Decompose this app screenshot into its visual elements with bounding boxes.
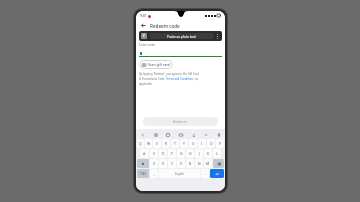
- button[interactable]: L: [213, 149, 221, 158]
- button[interactable]: R: [162, 139, 170, 148]
- staticText: M: [206, 161, 210, 166]
- button[interactable]: U: [189, 139, 197, 148]
- button[interactable]: Enter: [210, 169, 224, 178]
- staticText: E: [156, 141, 158, 146]
- button[interactable]: mic: [215, 131, 222, 138]
- staticText: H: [189, 151, 192, 156]
- button[interactable]: Scan gift card: [139, 60, 173, 69]
- button[interactable]: D: [159, 149, 167, 158]
- staticText: J: [199, 151, 200, 156]
- staticText: 9:41: [140, 14, 147, 18]
- staticText: ,: [154, 171, 155, 176]
- button[interactable]: More options: [215, 32, 220, 40]
- button[interactable]: ?123: [137, 169, 149, 178]
- button[interactable]: X: [159, 159, 167, 168]
- staticText: Terms and Conditions: [166, 77, 194, 81]
- staticText: X: [162, 161, 164, 166]
- button[interactable]: Back: [139, 21, 148, 30]
- button[interactable]: clip: [190, 131, 197, 138]
- button[interactable]: gear: [152, 131, 159, 138]
- button[interactable]: dash: [202, 131, 209, 138]
- button[interactable]: C: [168, 159, 176, 168]
- button[interactable]: G: [177, 149, 185, 158]
- button[interactable]: F: [168, 149, 176, 158]
- button[interactable]: M: [204, 159, 212, 168]
- staticText: & Promotional Code: [139, 77, 166, 81]
- staticText: English: [175, 172, 185, 176]
- button[interactable]: B: [186, 159, 194, 168]
- button[interactable]: N: [195, 159, 203, 168]
- staticText: Redeem: [173, 119, 188, 124]
- staticText: Y: [183, 141, 185, 146]
- staticText: Scan gift card: [148, 62, 170, 67]
- staticText: Redeem code: [150, 23, 180, 29]
- staticText: P: [143, 34, 145, 38]
- button[interactable]: P: [139, 31, 222, 41]
- button[interactable]: .: [201, 169, 209, 178]
- button[interactable]: Enter code: [139, 43, 222, 57]
- button[interactable]: Q: [137, 139, 144, 148]
- staticText: D: [162, 151, 165, 156]
- button[interactable]: A: [140, 149, 149, 158]
- button[interactable]: Paste as plain text: [150, 33, 213, 39]
- button[interactable]: English: [159, 169, 200, 178]
- staticText: applicable.: [139, 82, 153, 86]
- staticText: K: [207, 151, 210, 156]
- button[interactable]: sticker: [164, 131, 171, 138]
- staticText: T: [174, 141, 176, 146]
- button[interactable]: S: [150, 149, 158, 158]
- staticText: I: [201, 141, 203, 146]
- staticText: N: [198, 161, 201, 166]
- staticText: V: [180, 161, 183, 166]
- staticText: , as: [194, 77, 199, 81]
- staticText: W: [147, 141, 151, 146]
- button[interactable]: O: [207, 139, 215, 148]
- button[interactable]: Backspace: [213, 159, 224, 168]
- button[interactable]: gif: [177, 131, 184, 138]
- button[interactable]: Redeem: [143, 117, 218, 126]
- staticText: F: [171, 151, 173, 156]
- button[interactable]: E: [153, 139, 161, 148]
- staticText: .: [205, 171, 206, 176]
- staticText: Paste as plain text: [167, 34, 196, 39]
- staticText: O: [210, 141, 213, 146]
- button[interactable]: Shift: [137, 159, 149, 168]
- button[interactable]: Y: [180, 139, 188, 148]
- button[interactable]: H: [186, 149, 194, 158]
- staticText: L: [216, 151, 218, 156]
- button[interactable]: T: [171, 139, 179, 148]
- staticText: C: [171, 161, 174, 166]
- staticText: P: [219, 141, 222, 146]
- button[interactable]: P: [216, 139, 224, 148]
- staticText: A: [143, 151, 146, 156]
- button[interactable]: V: [177, 159, 185, 168]
- staticText: By tapping 'Redeem', you agree to the Gi…: [139, 72, 199, 76]
- button[interactable]: Z: [150, 159, 158, 168]
- staticText: Z: [153, 161, 155, 166]
- staticText: G: [180, 151, 183, 156]
- staticText: U: [192, 141, 195, 146]
- button[interactable]: K: [204, 149, 212, 158]
- button[interactable]: ,: [150, 169, 158, 178]
- staticText: Q: [139, 141, 142, 146]
- button[interactable]: chev: [139, 131, 146, 138]
- staticText: S: [153, 151, 155, 156]
- staticText: B: [189, 161, 192, 166]
- staticText: Enter code: [139, 43, 156, 47]
- staticText: R: [165, 141, 168, 146]
- button[interactable]: W: [145, 139, 152, 148]
- button[interactable]: J: [195, 149, 203, 158]
- button[interactable]: I: [198, 139, 206, 148]
- staticText: ?123: [140, 172, 146, 176]
